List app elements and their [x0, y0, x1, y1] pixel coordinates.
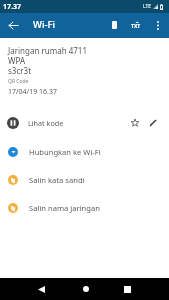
staticText: Hubungkan ke Wi-Fi: [29, 147, 101, 157]
staticText: TXT: [131, 23, 141, 30]
staticText: QR Code: [8, 78, 29, 85]
button[interactable]: Salin nama jaringan: [0, 194, 169, 222]
staticText: LTE: [143, 3, 152, 10]
staticText: Salin kata sandi: [29, 175, 85, 185]
button[interactable]: Favorite: [126, 114, 144, 132]
button[interactable]: Delete: [104, 15, 124, 35]
button[interactable]: Back: [30, 278, 52, 300]
button[interactable]: Recents: [116, 278, 138, 300]
staticText: 17.37: [3, 2, 21, 12]
button[interactable]: Home: [75, 278, 97, 300]
button[interactable]: Hubungkan ke Wi-Fi: [0, 138, 169, 166]
staticText: Salin nama jaringan: [29, 203, 100, 213]
button[interactable]: Back: [3, 15, 23, 35]
button[interactable]: Lihat kode: [0, 107, 169, 138]
button[interactable]: More options: [148, 16, 167, 35]
staticText: Wi-Fi: [33, 18, 56, 31]
button[interactable]: Export as text: [126, 15, 146, 35]
button[interactable]: Salin kata sandi: [0, 166, 169, 194]
staticText: Jaringan rumah 4711 WPA s3cr3t: [8, 45, 87, 76]
staticText: Lihat kode: [28, 118, 64, 128]
button[interactable]: Edit: [144, 114, 162, 132]
staticText: 17/04/19 16.37: [8, 87, 57, 97]
